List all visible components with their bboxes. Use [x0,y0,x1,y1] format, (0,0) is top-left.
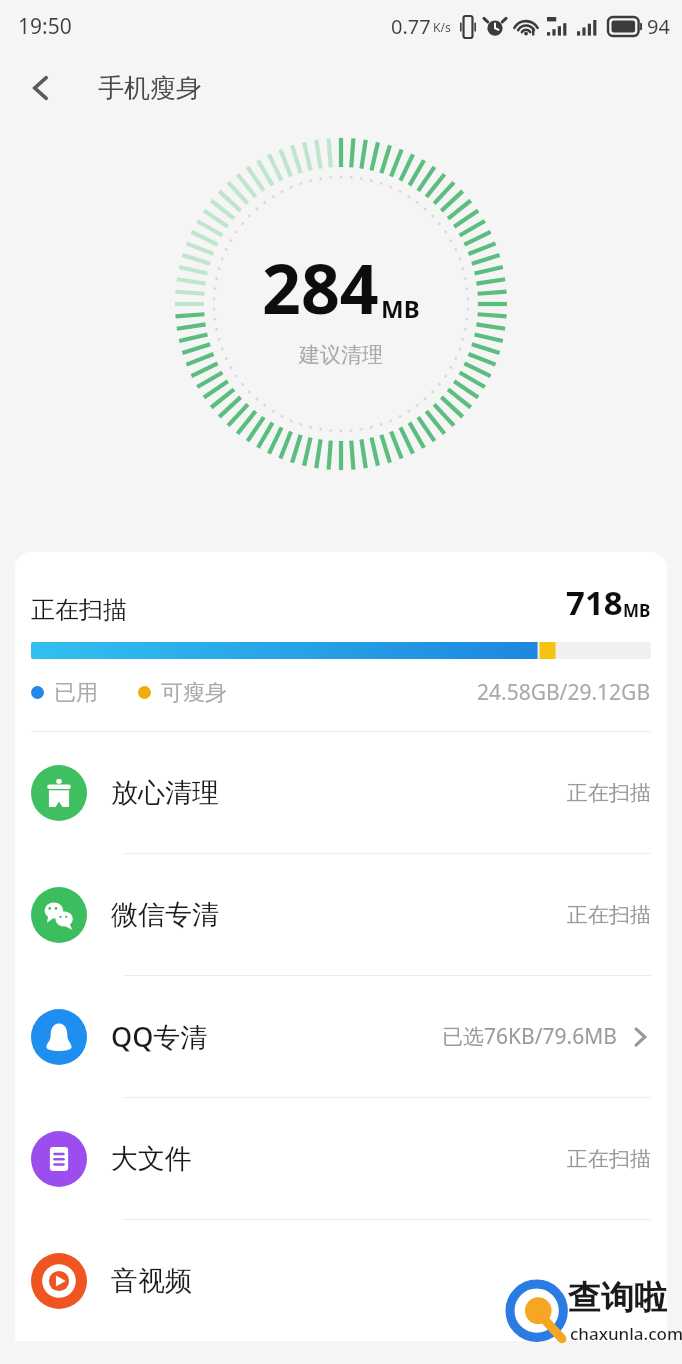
staticText: 正在扫描 [567,1146,651,1172]
staticText: 已选76KB/79.6MB [442,1022,617,1051]
staticText: MB [381,292,420,325]
staticText: 微信专清 [111,898,219,932]
staticText: QQ专清 [111,1018,208,1055]
staticText: 0.77 [391,13,431,40]
staticText: 19:50 [18,12,72,41]
staticText: K/s [433,19,451,35]
staticText: 24.58GB/29.12GB [477,678,651,707]
button[interactable]: QQ专清 [15,976,667,1097]
staticText: 已用 [54,679,98,707]
staticText: MB [623,599,651,622]
staticText: 放心清理 [111,776,219,810]
button[interactable]: 微信专清 [15,854,667,975]
button[interactable]: 大文件 [15,1098,667,1219]
staticText: 94 [647,13,670,40]
staticText: 正在扫描 [31,595,127,625]
staticText: 718 [566,580,623,625]
staticText: 284 [262,241,379,334]
staticText: 手机瘦身 [98,72,202,105]
staticText: chaxunla.com [570,1322,682,1345]
button[interactable]: Back [12,59,70,117]
staticText: 可瘦身 [161,679,227,707]
button[interactable]: 音视频 [15,1220,667,1341]
staticText: 查询啦 [568,1277,667,1319]
button[interactable]: 放心清理 [15,732,667,853]
staticText: 大文件 [111,1142,192,1176]
staticText: 音视频 [111,1264,192,1298]
staticText: 正在扫描 [567,902,651,928]
staticText: 建议清理 [299,342,383,368]
staticText: 正在扫描 [567,780,651,806]
